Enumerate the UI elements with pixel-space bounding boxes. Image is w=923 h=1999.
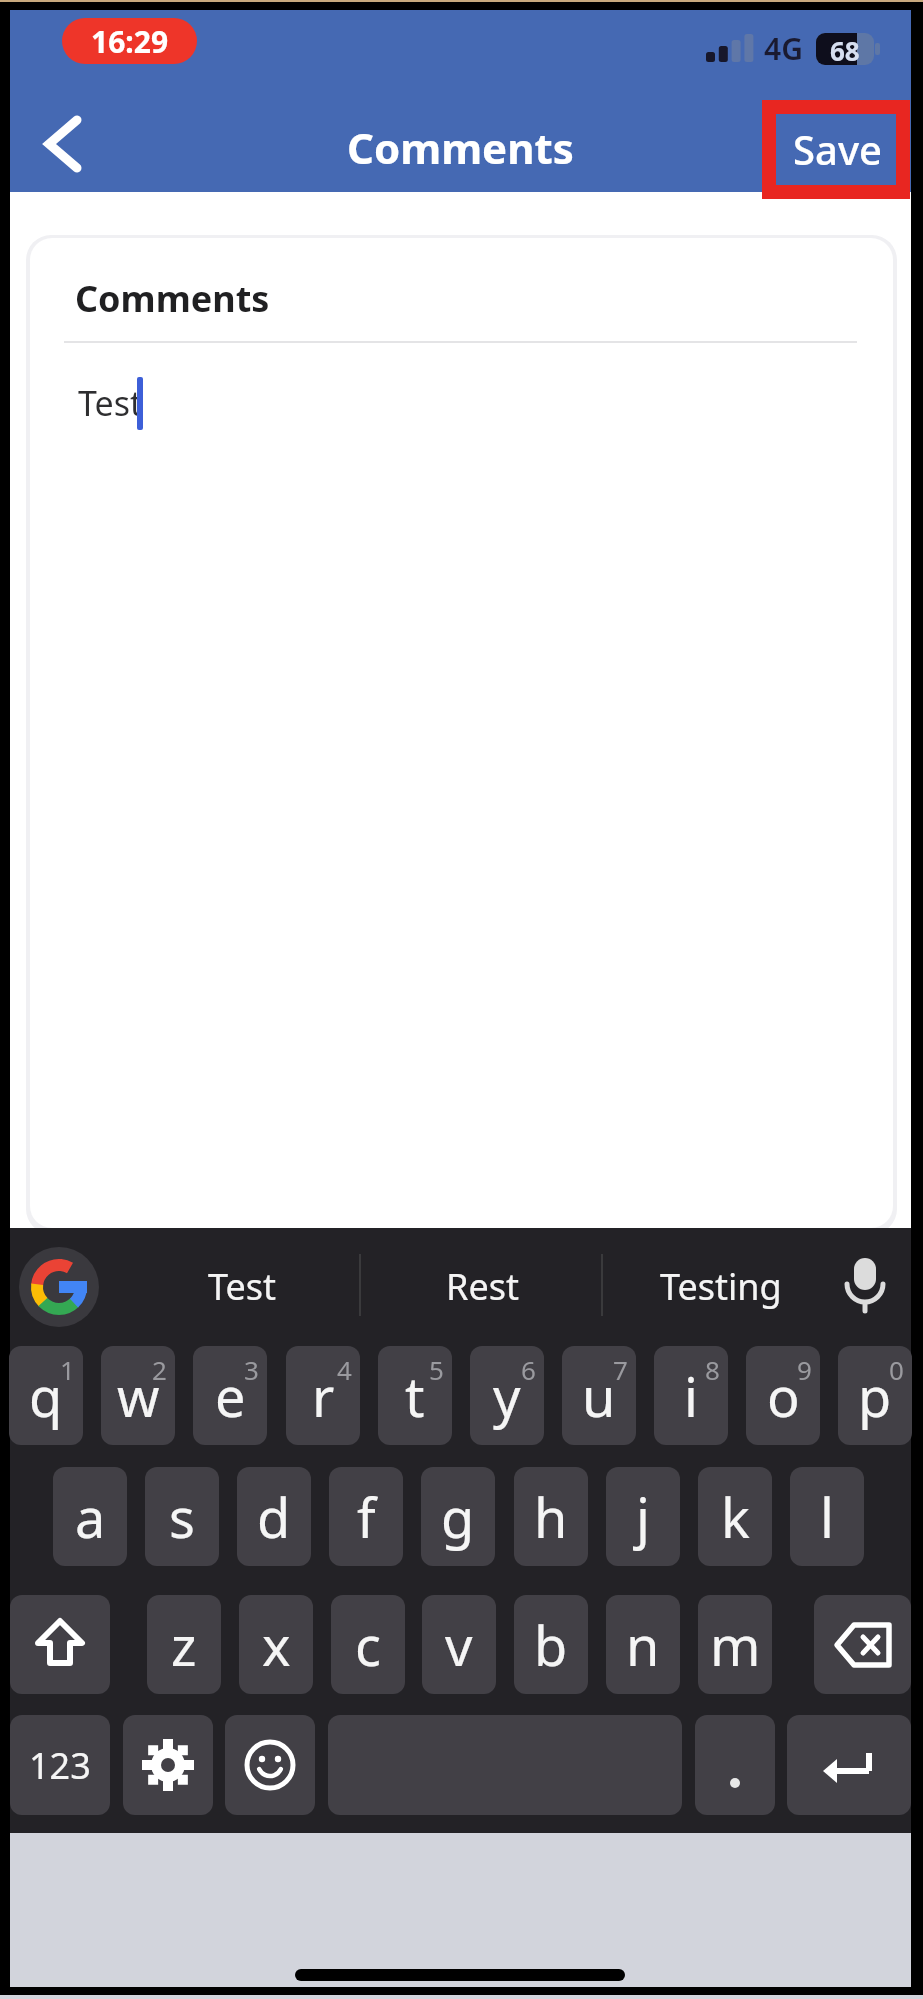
staticText: j — [636, 1480, 650, 1554]
button[interactable] — [30, 238, 893, 1228]
button[interactable]: h — [514, 1467, 588, 1566]
staticText: Rest — [446, 1262, 519, 1311]
staticText: Test — [208, 1262, 277, 1311]
button[interactable]: a — [53, 1467, 127, 1566]
staticText: w — [117, 1359, 160, 1433]
staticText: Test — [78, 380, 143, 424]
button[interactable]: Rest — [372, 1260, 592, 1312]
button[interactable]: i — [654, 1346, 728, 1445]
button[interactable]: n — [606, 1595, 680, 1694]
button[interactable] — [123, 1715, 213, 1815]
button[interactable]: u — [562, 1346, 636, 1445]
staticText: p — [858, 1359, 892, 1433]
button[interactable]: Test — [132, 1260, 352, 1312]
staticText: 2 — [152, 1352, 167, 1387]
button[interactable] — [28, 108, 98, 184]
staticText: u — [582, 1359, 616, 1433]
staticText: s — [169, 1480, 195, 1554]
staticText: Comments — [347, 119, 574, 176]
button[interactable]: o — [746, 1346, 820, 1445]
staticText: 8 — [705, 1352, 720, 1387]
button[interactable]: l — [790, 1467, 864, 1566]
staticText: 16:29 — [91, 21, 169, 62]
staticText: z — [171, 1608, 197, 1682]
staticText: Comments — [75, 274, 270, 318]
button[interactable]: d — [237, 1467, 311, 1566]
staticText: b — [534, 1608, 568, 1682]
button[interactable]: y — [470, 1346, 544, 1445]
button[interactable]: k — [698, 1467, 772, 1566]
staticText: a — [75, 1480, 106, 1554]
button[interactable]: v — [422, 1595, 496, 1694]
button[interactable] — [842, 1256, 888, 1316]
button[interactable]: w — [101, 1346, 175, 1445]
staticText: m — [710, 1608, 761, 1682]
staticText: o — [767, 1359, 800, 1433]
button[interactable]: c — [331, 1595, 405, 1694]
staticText: 5 — [429, 1352, 444, 1387]
staticText: 1 — [60, 1352, 75, 1387]
button[interactable] — [695, 1715, 775, 1815]
button[interactable]: f — [329, 1467, 403, 1566]
button[interactable]: m — [698, 1595, 772, 1694]
staticText: 7 — [613, 1352, 628, 1387]
button[interactable] — [295, 1969, 625, 1981]
button[interactable]: j — [606, 1467, 680, 1566]
staticText: k — [721, 1480, 750, 1554]
staticText: i — [684, 1359, 698, 1433]
button[interactable] — [19, 1247, 99, 1327]
staticText: l — [820, 1480, 834, 1554]
staticText: v — [445, 1608, 473, 1682]
staticText: n — [626, 1608, 660, 1682]
staticText: 68 — [830, 33, 860, 65]
button[interactable]: Save — [779, 116, 895, 182]
staticText: 123 — [29, 1741, 91, 1790]
staticText: t — [405, 1359, 425, 1433]
staticText: d — [257, 1480, 291, 1554]
button[interactable]: q — [9, 1346, 83, 1445]
staticText: q — [29, 1359, 63, 1433]
button[interactable]: t — [378, 1346, 452, 1445]
staticText: 4G — [764, 28, 803, 66]
staticText: Testing — [660, 1262, 782, 1311]
staticText: g — [441, 1480, 475, 1554]
button[interactable]: z — [147, 1595, 221, 1694]
button[interactable] — [787, 1715, 911, 1815]
button[interactable] — [225, 1715, 315, 1815]
staticText: 4 — [337, 1352, 352, 1387]
button[interactable]: s — [145, 1467, 219, 1566]
button[interactable]: p — [838, 1346, 912, 1445]
staticText: f — [357, 1480, 376, 1554]
button[interactable] — [814, 1595, 911, 1694]
button[interactable]: e — [193, 1346, 267, 1445]
staticText: h — [534, 1480, 568, 1554]
button[interactable]: Testing — [611, 1260, 831, 1312]
staticText: Save — [793, 122, 882, 176]
staticText: 9 — [797, 1352, 812, 1387]
button[interactable]: b — [514, 1595, 588, 1694]
staticText: c — [355, 1608, 381, 1682]
staticText: 3 — [244, 1352, 259, 1387]
staticText: 0 — [889, 1352, 904, 1387]
button[interactable]: r — [286, 1346, 360, 1445]
staticText: 6 — [521, 1352, 536, 1387]
staticText: r — [312, 1359, 335, 1433]
button[interactable]: x — [239, 1595, 313, 1694]
button[interactable]: g — [421, 1467, 495, 1566]
staticText: y — [493, 1359, 521, 1433]
button[interactable]: 16:29 — [62, 18, 197, 64]
button[interactable]: 123 — [10, 1715, 110, 1815]
staticText: x — [262, 1608, 291, 1682]
button[interactable] — [10, 1595, 110, 1694]
staticText: e — [215, 1359, 246, 1433]
